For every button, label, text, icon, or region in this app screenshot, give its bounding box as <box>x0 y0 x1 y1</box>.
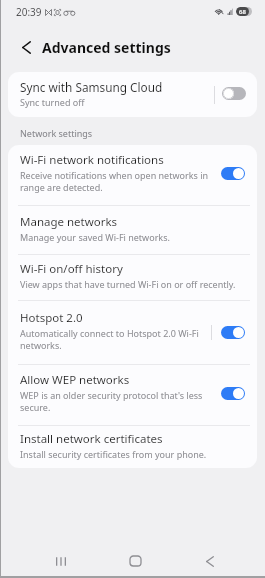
button[interactable]: Turn on <box>222 87 246 100</box>
button[interactable]: Home <box>118 546 152 576</box>
staticText: Sync turned off <box>20 96 85 108</box>
staticText: Install security certificates from your … <box>20 448 207 460</box>
staticText: WEP is an older security protocol that's… <box>20 389 215 414</box>
button[interactable]: Recent apps <box>44 546 78 576</box>
staticText: Allow WEP networks <box>20 372 130 388</box>
staticText: Advanced settings <box>42 38 171 57</box>
staticText: View apps that have turned Wi-Fi on or o… <box>20 278 236 290</box>
staticText: Sync with Samsung Cloud <box>20 79 163 95</box>
button[interactable]: Manage networks <box>8 206 257 254</box>
staticText: Wi-Fi network notifications <box>20 152 164 168</box>
button[interactable]: Turn off <box>221 326 245 339</box>
staticText: Manage networks <box>20 214 118 230</box>
staticText: Hotspot 2.0 <box>20 310 83 326</box>
button[interactable]: Turn off <box>221 167 245 180</box>
button[interactable]: Wi-Fi network notifications <box>8 145 257 205</box>
staticText: Manage your saved Wi-Fi networks. <box>20 231 170 243</box>
staticText: Automatically connect to Hotspot 2.0 Wi-… <box>20 327 205 352</box>
button[interactable]: Allow WEP networks <box>8 365 257 425</box>
button[interactable]: Turn off <box>221 387 245 400</box>
button[interactable]: Install network certificates <box>8 426 257 468</box>
button[interactable]: Sync with Samsung Cloud <box>8 72 257 117</box>
button[interactable]: Back <box>10 31 42 63</box>
staticText: Network settings <box>20 127 93 139</box>
staticText: Receive notifications when open networks… <box>20 169 215 194</box>
staticText: Install network certificates <box>20 431 163 447</box>
button[interactable]: Hotspot 2.0 <box>8 301 257 364</box>
staticText: 68 <box>239 8 246 16</box>
button[interactable]: Wi-Fi on/off history <box>8 255 257 300</box>
staticText: Wi-Fi on/off history <box>20 261 123 277</box>
button[interactable]: Back <box>193 546 227 576</box>
staticText: 20:39 <box>16 5 42 19</box>
